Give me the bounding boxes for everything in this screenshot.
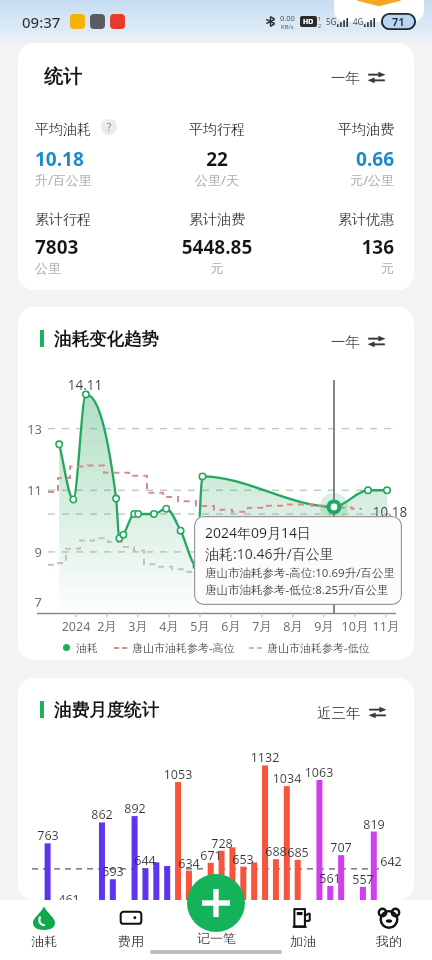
button[interactable]: 记一笔	[173, 900, 259, 960]
staticText: 557	[343, 871, 383, 888]
staticText: 元/公里	[274, 171, 394, 189]
button[interactable]: 一年	[328, 65, 389, 90]
staticText: 3月	[116, 618, 160, 635]
button[interactable]: 一年	[328, 329, 389, 354]
staticText: 1053	[158, 766, 198, 783]
staticText: 7	[18, 593, 42, 611]
staticText: 10.18	[35, 146, 175, 172]
staticText: 2024年09月14日	[205, 523, 312, 542]
staticText: 0.66	[274, 146, 394, 172]
staticText: 唐山市油耗参考-低位	[267, 640, 370, 655]
staticText: 1034	[267, 770, 307, 787]
staticText: 862	[82, 806, 122, 823]
staticText: 10月	[333, 618, 377, 635]
staticText: 22	[157, 146, 277, 172]
staticText: 加油	[290, 933, 316, 949]
button[interactable]: 我的	[346, 900, 432, 960]
staticText: 11月	[364, 618, 408, 635]
staticText: 642	[371, 853, 411, 870]
staticText: 09:37	[22, 12, 61, 32]
staticText: 5G	[326, 16, 337, 27]
staticText: 油耗	[76, 641, 98, 655]
staticText: 136	[274, 234, 394, 260]
staticText: 461	[49, 891, 89, 900]
staticText: 平均油费	[274, 121, 394, 139]
staticText: 记一笔	[197, 930, 236, 946]
staticText: 油耗变化趋势	[54, 328, 254, 350]
staticText: 费用	[118, 933, 144, 949]
staticText: KB/s	[281, 23, 294, 31]
staticText: 1063	[299, 764, 339, 781]
staticText: 819	[354, 816, 394, 833]
button[interactable]: 加油	[260, 900, 346, 960]
staticText: ?	[107, 120, 112, 134]
staticText: 统计	[44, 65, 144, 89]
staticText: 9月	[302, 618, 346, 635]
staticText: 11	[18, 481, 42, 499]
staticText: 6月	[209, 618, 253, 635]
staticText: 561	[310, 870, 350, 887]
staticText: 公里	[35, 260, 175, 276]
staticText: 唐山市油耗参考-高位:10.69升/百公里	[205, 565, 395, 581]
staticText: 671	[191, 847, 231, 864]
staticText: 平均行程	[157, 121, 277, 139]
staticText: 2月	[85, 618, 129, 635]
staticText: 14.11	[63, 376, 107, 394]
staticText: 5448.85	[157, 234, 277, 260]
button[interactable]: 记一笔	[187, 874, 245, 932]
staticText: 688	[256, 843, 296, 860]
staticText: 近三年	[317, 704, 361, 722]
button[interactable]: 油耗	[0, 900, 87, 960]
staticText: 1132	[245, 749, 285, 766]
staticText: 2	[318, 22, 322, 29]
staticText: 644	[125, 852, 165, 869]
staticText: 5月	[178, 618, 222, 635]
staticText: 公里/天	[157, 171, 277, 189]
button[interactable]: 近三年	[314, 700, 390, 725]
staticText: 油耗:10.46升/百公里	[205, 544, 334, 563]
button[interactable]: 一年	[328, 65, 389, 90]
staticText: 10.18	[368, 503, 412, 521]
staticText: 892	[115, 800, 155, 817]
staticText: 0.00	[280, 13, 295, 23]
staticText: 2024	[54, 618, 98, 635]
staticText: 763	[28, 827, 68, 844]
staticText: 7月	[240, 618, 284, 635]
staticText: 一年	[331, 333, 360, 351]
staticText: 唐山市油耗参考-高位	[132, 640, 235, 655]
staticText: 元	[274, 260, 394, 276]
staticText: 4G	[353, 16, 364, 27]
button[interactable]: 说明	[101, 119, 117, 135]
staticText: 728	[202, 835, 242, 852]
staticText: 平均油耗	[35, 121, 175, 139]
staticText: 元	[157, 260, 277, 276]
staticText: 634	[169, 855, 209, 872]
staticText: 8月	[271, 618, 315, 635]
staticText: 累计油费	[157, 211, 277, 229]
staticText: HD	[303, 17, 314, 27]
staticText: 一年	[331, 69, 360, 87]
button[interactable]: 费用	[87, 900, 174, 960]
staticText: 升/百公里	[35, 171, 175, 189]
staticText: 累计行程	[35, 211, 175, 229]
staticText: 累计优惠	[274, 211, 394, 229]
staticText: 707	[321, 839, 361, 856]
staticText: 593	[93, 863, 133, 880]
staticText: 我的	[376, 933, 402, 949]
staticText: 油耗	[31, 933, 57, 949]
staticText: 13	[18, 420, 42, 438]
staticText: 油费月度统计	[54, 699, 254, 721]
staticText: 71	[392, 14, 405, 29]
staticText: 唐山市油耗参考-低位:8.25升/百公里	[205, 582, 389, 598]
staticText: 1	[318, 15, 322, 22]
staticText: 9	[18, 543, 42, 561]
staticText: 685	[278, 844, 318, 861]
staticText: 653	[223, 851, 263, 868]
staticText: 7803	[35, 234, 175, 260]
staticText: 4月	[147, 618, 191, 635]
